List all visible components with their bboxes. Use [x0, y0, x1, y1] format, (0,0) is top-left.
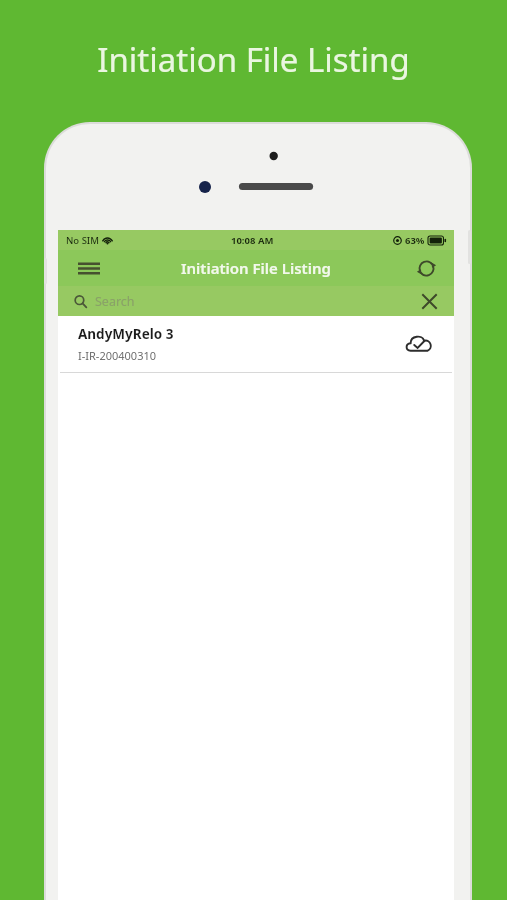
staticText: 63% [405, 234, 425, 247]
staticText: AndyMyRelo 3 [78, 325, 174, 343]
staticText: Initiation File Listing [181, 258, 331, 278]
button[interactable]: Refresh [410, 252, 442, 284]
staticText: Initiation File Listing [97, 37, 410, 82]
button[interactable]: AndyMyRelo 3 [58, 316, 454, 372]
staticText: No SIM [66, 234, 99, 247]
button[interactable]: Clear search [418, 290, 440, 312]
button[interactable]: Menu [72, 251, 106, 285]
staticText: 10:08 AM [231, 234, 274, 247]
button[interactable]: Search [58, 286, 454, 316]
staticText: I-IR-200400310 [78, 348, 157, 363]
staticText: Search [95, 293, 135, 310]
button[interactable]: Synced [402, 327, 436, 361]
